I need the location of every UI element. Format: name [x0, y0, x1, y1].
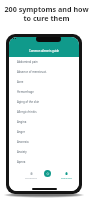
staticText: Anger [17, 130, 25, 134]
button[interactable]: Angina [17, 117, 79, 127]
staticText: Allergic rhinitis [17, 110, 37, 114]
staticText: Angina [17, 120, 27, 124]
button[interactable]: Apnea [17, 157, 79, 167]
button[interactable]: Allergic rhinitis [17, 107, 79, 117]
button[interactable]: Anxiety [17, 147, 79, 157]
button[interactable]: Remedies [59, 169, 73, 182]
button[interactable]: Absence of menstruat. [17, 67, 79, 77]
button[interactable]: Anger [17, 127, 79, 137]
staticText: Anxiety [17, 150, 27, 154]
staticText: Absence of menstruat. [17, 70, 47, 74]
staticText: Remedies [61, 176, 72, 179]
staticText: Aging of the skin [17, 100, 40, 104]
staticText: Abdominal pain [17, 60, 38, 64]
button[interactable]: Anorexia [17, 137, 79, 147]
button[interactable]: Acne [17, 77, 79, 87]
staticText: Anorexia [17, 140, 29, 144]
button[interactable]: Search [44, 170, 51, 177]
staticText: 200 symptoms and how to cure them [4, 4, 89, 23]
staticText: Hemorrhage [17, 90, 34, 94]
staticText: Apnea [17, 160, 26, 164]
button[interactable]: Abdominal pain [17, 57, 79, 67]
staticText: Symptoms [25, 176, 37, 179]
button[interactable]: Aging of the skin [17, 97, 79, 107]
staticText: Common ailments guide [29, 49, 59, 53]
button[interactable]: Arthritis [17, 167, 79, 177]
button[interactable]: Hemorrhage [17, 87, 79, 97]
button[interactable]: Symptoms [24, 169, 38, 182]
staticText: Acne [17, 80, 24, 84]
